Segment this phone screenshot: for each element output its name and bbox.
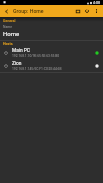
button[interactable]: Refresh <box>82 5 91 17</box>
button[interactable]: Save <box>73 5 82 17</box>
staticText: Group: Home <box>13 8 44 14</box>
staticText: Home <box>3 30 20 37</box>
staticText: Hosts <box>3 42 13 46</box>
button[interactable]: Name <box>0 23 103 40</box>
staticText: 192.168.1.145/6C:F1:C0:2E:44:6B <box>12 67 62 71</box>
button[interactable]: More options <box>91 5 101 17</box>
staticText: 192.168.1.10/9E:65:5E:63:55:B0 <box>12 54 60 58</box>
button[interactable]: Main PC <box>0 46 103 59</box>
staticText: 4:08 <box>93 1 100 5</box>
button[interactable]: Back <box>0 5 12 17</box>
staticText: Main PC <box>12 48 30 54</box>
staticText: Zion <box>12 61 22 67</box>
button[interactable]: Zion <box>0 59 103 72</box>
staticText: General <box>3 19 16 23</box>
staticText: Name <box>3 25 13 29</box>
